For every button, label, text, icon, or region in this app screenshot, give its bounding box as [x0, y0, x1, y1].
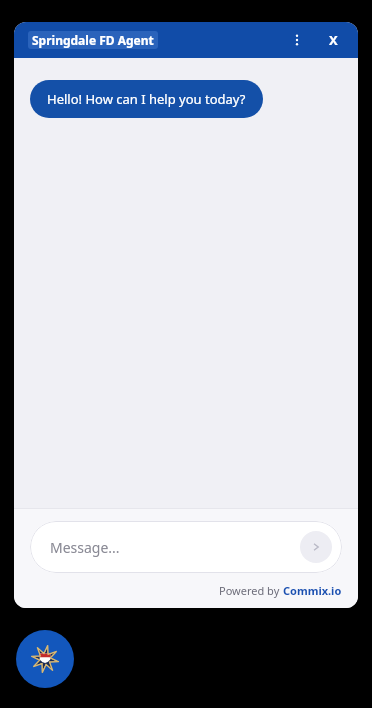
staticText: Commix.io: [283, 583, 342, 598]
button[interactable]: Send: [300, 531, 332, 563]
button[interactable]: Open chat: [16, 630, 74, 688]
button[interactable]: Message...: [30, 521, 342, 573]
button[interactable]: Hello! How can I help you today?: [30, 80, 263, 118]
staticText: Powered by: [219, 583, 283, 598]
staticText: Hello! How can I help you today?: [47, 90, 246, 108]
staticText: Springdale FD Agent: [32, 32, 154, 48]
staticText: X: [329, 31, 338, 49]
button[interactable]: More options: [282, 25, 312, 55]
staticText: Message...: [50, 538, 120, 557]
button[interactable]: Close: [318, 25, 348, 55]
